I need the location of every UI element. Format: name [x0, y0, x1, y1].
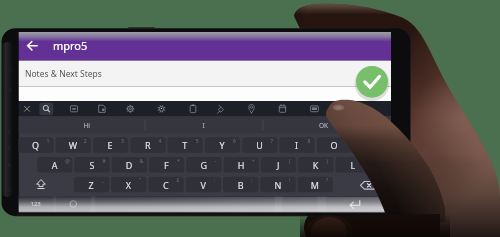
button[interactable]: mpro5 notes screen	[0, 0, 500, 237]
